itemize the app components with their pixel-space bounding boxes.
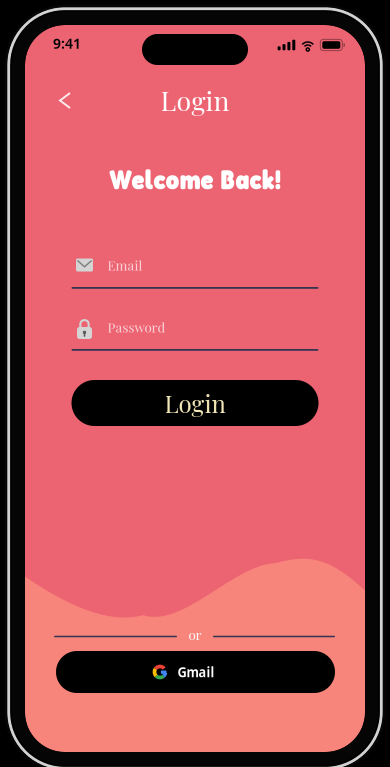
button[interactable]: Back xyxy=(33,81,89,120)
staticText: 9:41 xyxy=(53,33,81,53)
button[interactable]: Login xyxy=(71,380,318,426)
staticText: Email xyxy=(107,256,142,274)
staticText: Login xyxy=(164,387,225,419)
staticText: or xyxy=(188,626,201,643)
staticText: Welcome Back! xyxy=(108,162,281,196)
staticText: Password xyxy=(107,318,165,336)
staticText: Login xyxy=(160,82,229,118)
button[interactable]: Gmail xyxy=(56,651,335,693)
staticText: Gmail xyxy=(177,663,214,681)
